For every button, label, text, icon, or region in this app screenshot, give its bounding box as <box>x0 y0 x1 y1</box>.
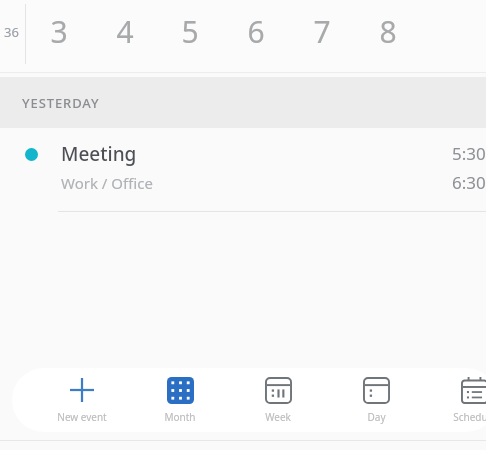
staticText: Day <box>367 410 386 424</box>
button[interactable]: Month view <box>146 368 214 432</box>
staticText: 7 <box>313 11 331 52</box>
staticText: Month <box>164 410 196 424</box>
staticText: 6:30 <box>452 171 486 194</box>
button[interactable]: 6 <box>223 0 289 66</box>
staticText: 36 <box>4 23 19 41</box>
staticText: 5 <box>181 11 199 52</box>
button[interactable]: Week view <box>244 368 312 432</box>
staticText: Week <box>265 410 291 424</box>
staticText: Schedule <box>453 410 486 424</box>
staticText: 8 <box>379 11 397 52</box>
staticText: Work / Office <box>61 173 153 193</box>
staticText: New event <box>57 410 107 424</box>
button[interactable]: Meeting <box>0 128 486 212</box>
button[interactable]: 7 <box>289 0 355 66</box>
staticText: Meeting <box>61 141 137 167</box>
button[interactable]: 4 <box>92 0 158 66</box>
staticText: YESTERDAY <box>22 94 100 112</box>
button[interactable]: Day view <box>342 368 410 432</box>
staticText: 6 <box>247 11 265 52</box>
button[interactable]: 5 <box>157 0 223 66</box>
button[interactable]: 3 <box>26 0 92 66</box>
button[interactable]: 8 <box>355 0 421 66</box>
button[interactable]: Schedule view <box>440 368 486 432</box>
staticText: 5:30 <box>452 142 486 165</box>
staticText: 4 <box>116 11 134 52</box>
staticText: 3 <box>50 11 68 52</box>
button[interactable]: New event <box>48 368 116 432</box>
